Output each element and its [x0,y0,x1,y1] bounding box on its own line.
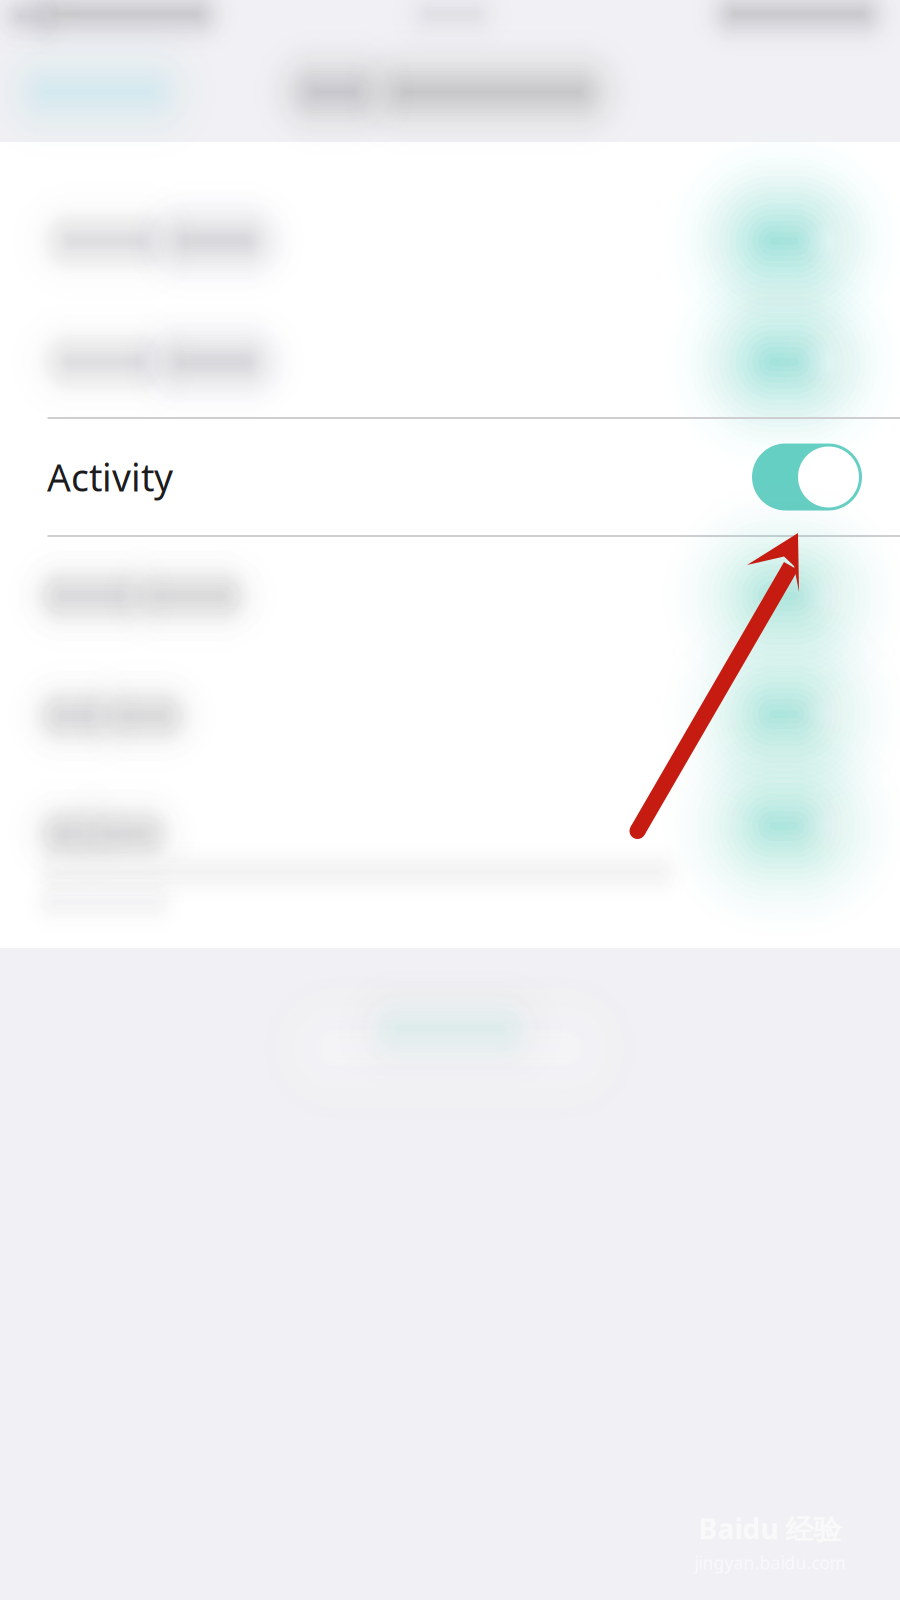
staticText: Baidu 经验 [698,1510,841,1547]
button[interactable] [0,303,900,421]
button[interactable] [0,537,900,655]
button[interactable] [0,181,900,299]
button[interactable]: Activity [0,418,900,536]
staticText: Activity [47,452,173,502]
button[interactable] [0,771,900,945]
button[interactable] [0,655,900,773]
